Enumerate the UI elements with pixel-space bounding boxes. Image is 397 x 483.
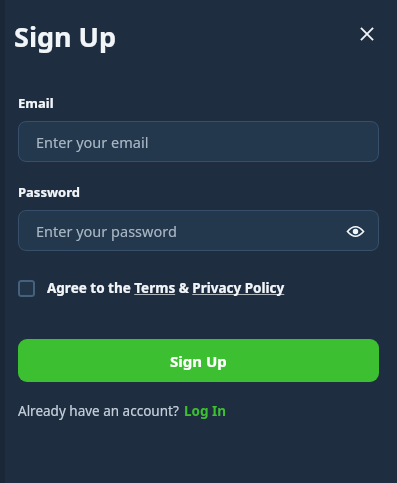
button[interactable]: Enter your email [18,121,379,162]
staticText: Email [18,94,54,112]
staticText: Agree to the Terms & Privacy Policy [47,279,285,297]
staticText: Enter your password [36,221,177,241]
button[interactable]: Log In [179,400,232,422]
button[interactable]: Sign Up [18,339,379,382]
staticText: Already have an account? [18,402,179,420]
staticText: Password [18,183,80,201]
button[interactable]: Enter your password [18,210,379,251]
staticText: Sign Up [170,351,227,371]
staticText: Log In [184,402,227,420]
button[interactable]: Show password [341,217,369,245]
button[interactable]: Close [349,16,385,52]
staticText: Sign Up [14,18,117,55]
staticText: Enter your email [36,132,149,152]
button[interactable]: Agree to the Terms & Privacy Policy [12,275,291,301]
